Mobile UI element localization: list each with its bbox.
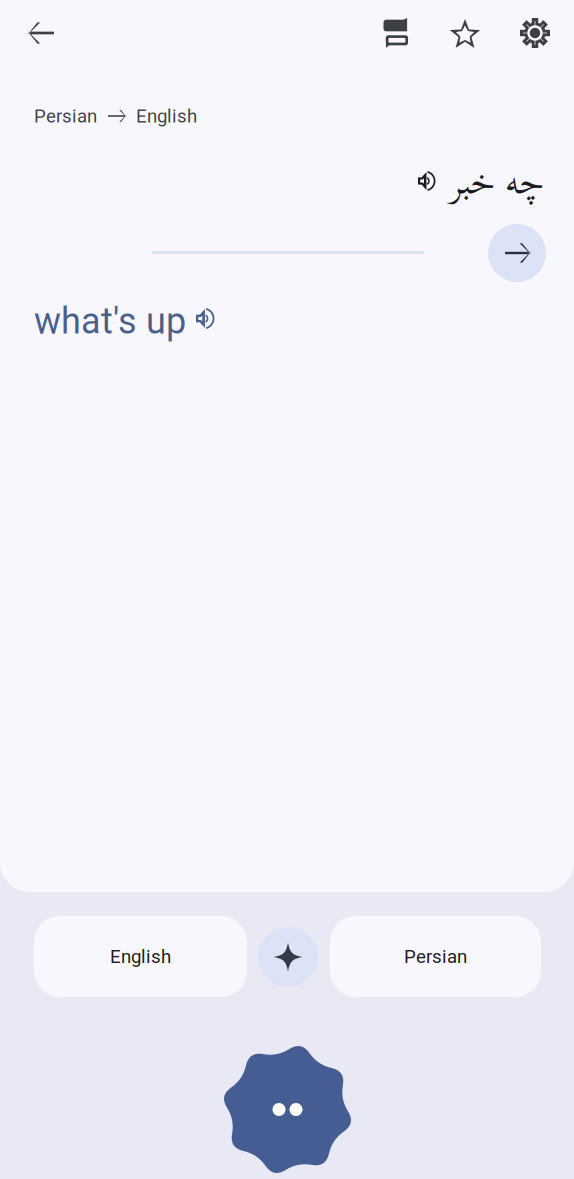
button[interactable]: Saved phrases <box>439 10 491 60</box>
staticText: چه خبر <box>449 145 544 193</box>
button[interactable]: Transcribe <box>371 8 423 58</box>
staticText: what's up <box>34 300 186 342</box>
button[interactable]: Back <box>17 8 67 58</box>
button[interactable]: Persian <box>34 105 97 127</box>
staticText: English <box>136 105 197 127</box>
button[interactable]: Listen to source text <box>418 172 436 190</box>
staticText: Persian <box>34 105 97 127</box>
button[interactable]: Listen to translation <box>196 309 215 328</box>
button[interactable]: Translate <box>488 224 546 282</box>
button[interactable]: Persian <box>330 916 541 997</box>
staticText: Persian <box>404 946 467 967</box>
staticText: English <box>110 946 171 967</box>
button[interactable]: AI translate <box>258 927 318 987</box>
button[interactable]: English <box>136 105 197 127</box>
button[interactable]: Conversation mode <box>218 1040 357 1179</box>
button[interactable]: Settings <box>509 8 561 58</box>
button[interactable]: English <box>34 916 247 997</box>
button[interactable]: what's up <box>34 300 254 342</box>
